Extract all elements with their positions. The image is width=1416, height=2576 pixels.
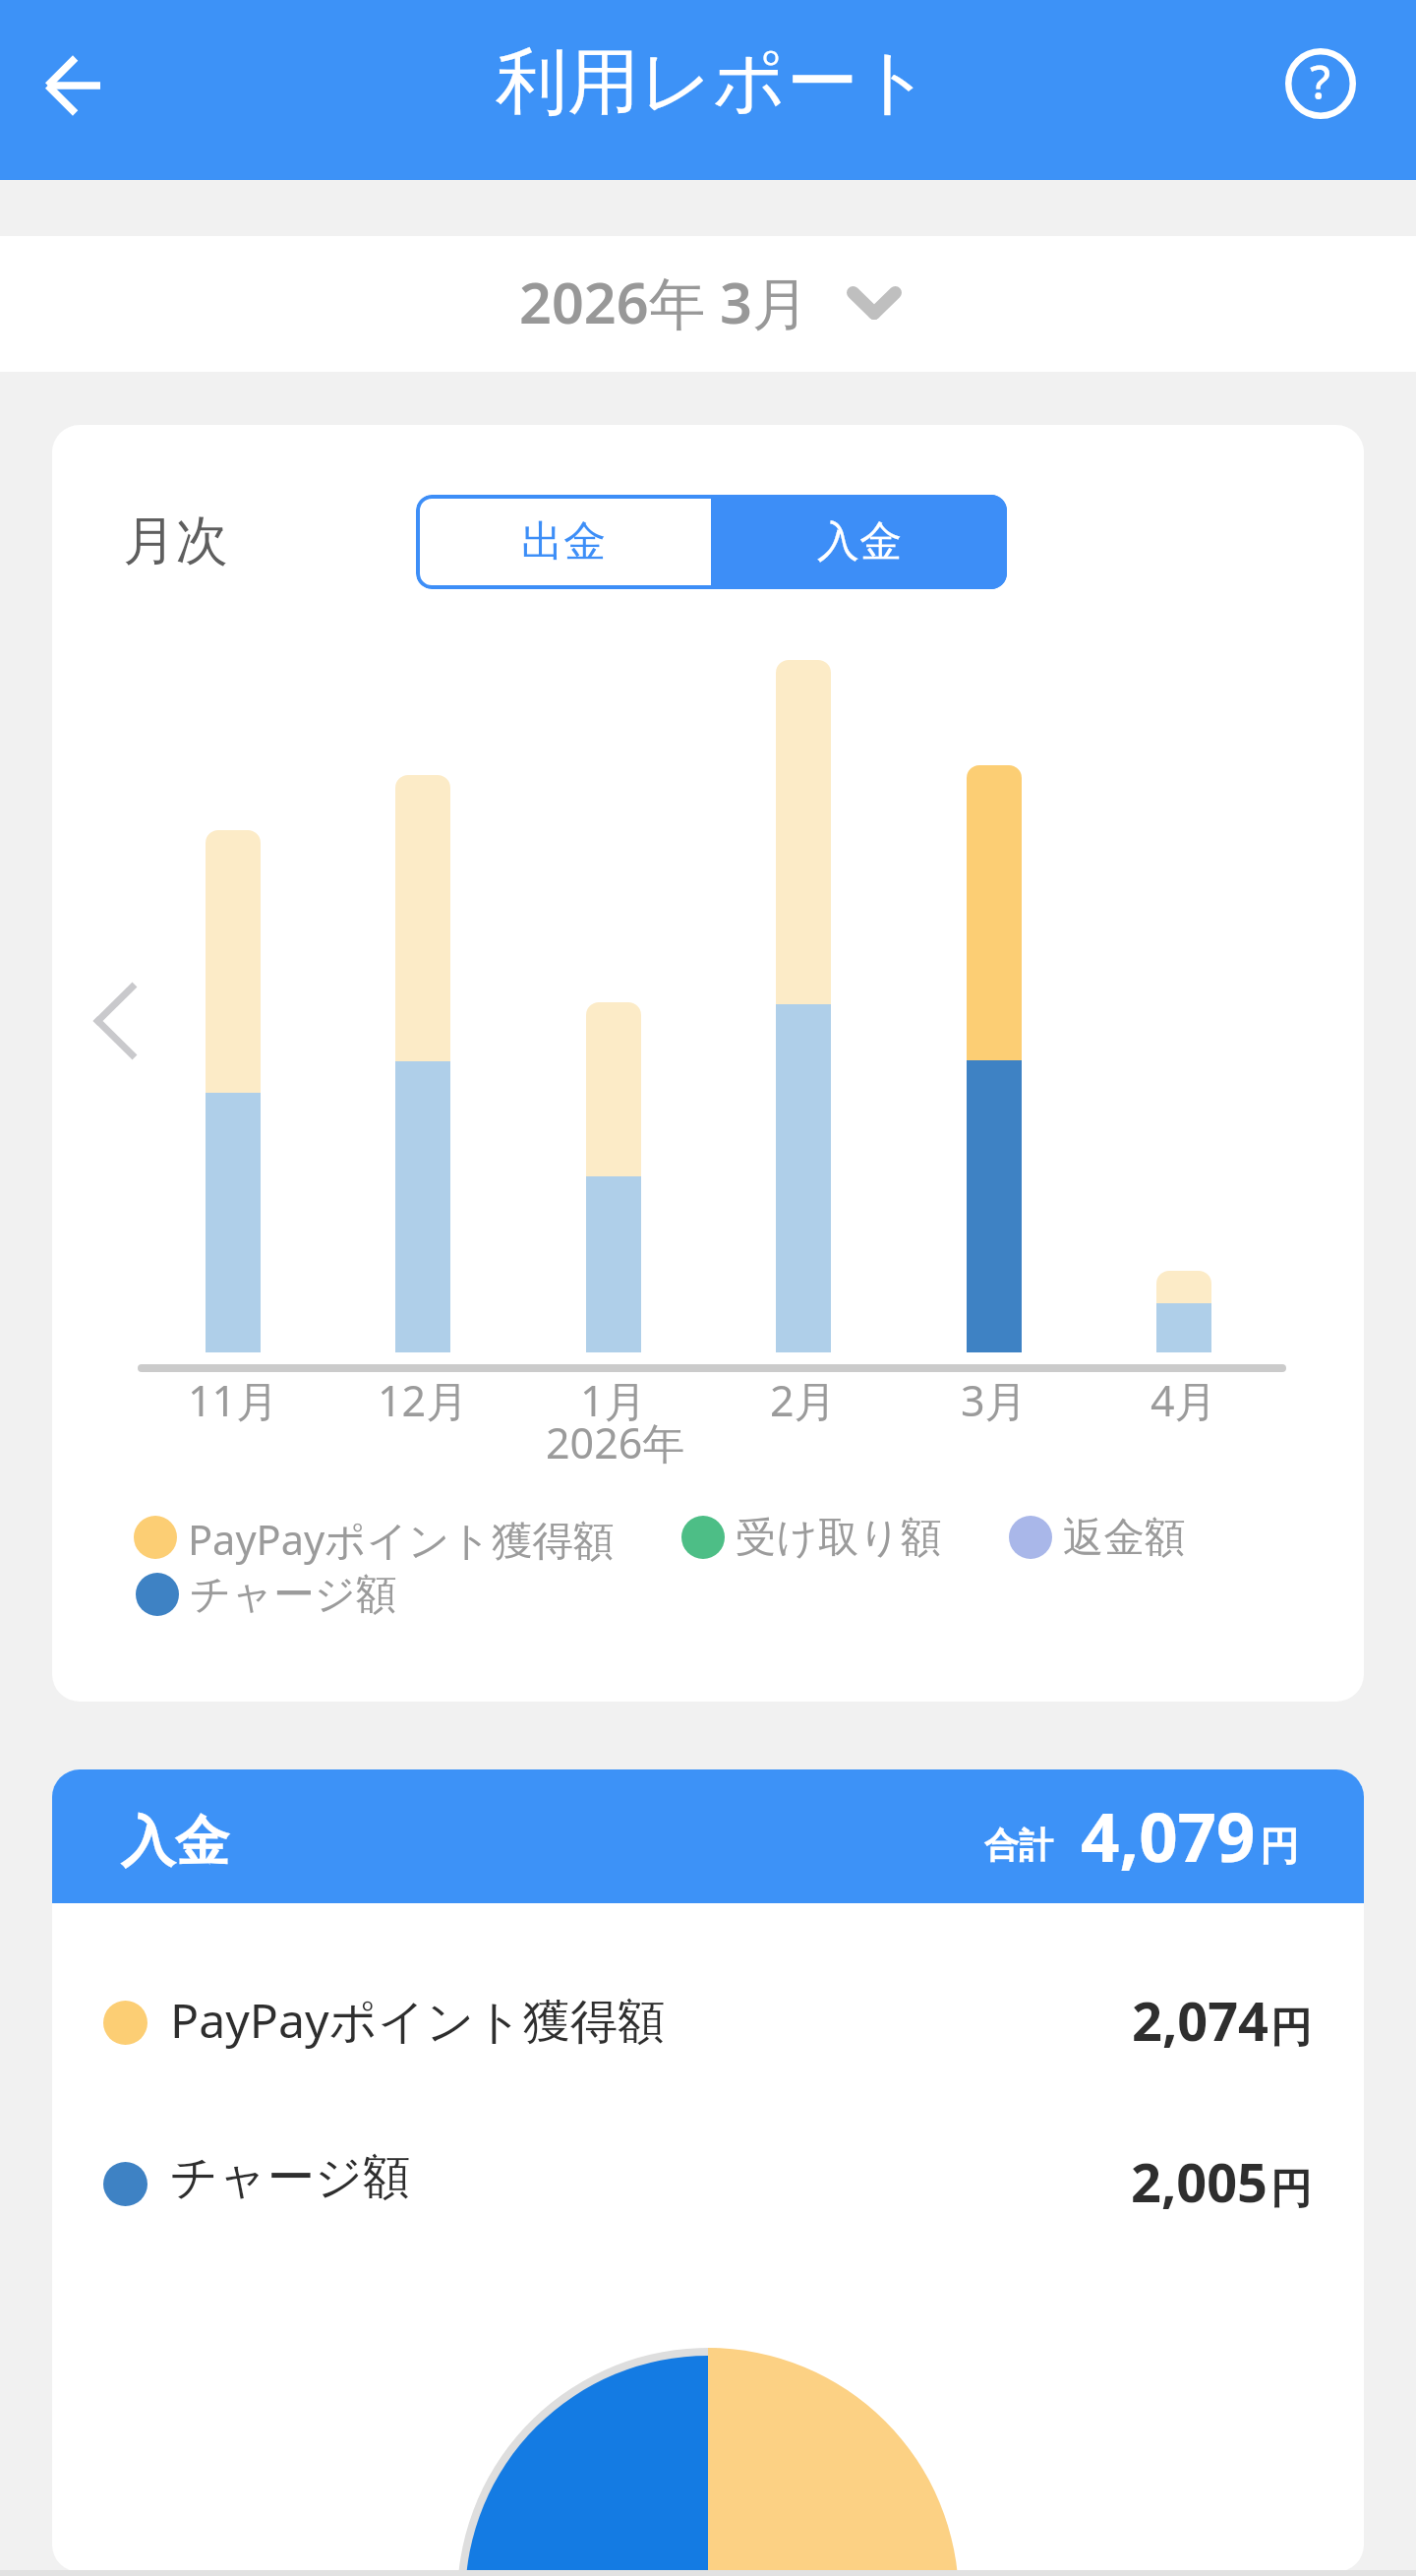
staticText: 利用レポート	[496, 37, 932, 128]
button[interactable]: Previous month	[60, 949, 170, 1093]
staticText: 円	[1260, 1822, 1299, 1871]
button[interactable]: 2026年 3月	[0, 236, 1416, 372]
staticText: チャージ額	[190, 1569, 397, 1620]
staticText: 3月	[961, 1371, 1028, 1429]
staticText: 2月	[770, 1371, 837, 1429]
staticText: 月次	[123, 508, 228, 573]
staticText: 12月	[378, 1371, 469, 1429]
staticText: 4月	[1150, 1371, 1217, 1429]
button[interactable]: Back	[14, 27, 132, 145]
button[interactable]: 出金	[416, 495, 711, 589]
staticText: 返金額	[1063, 1512, 1186, 1563]
staticText: 2026年	[546, 1413, 685, 1471]
staticText: PayPayポイント獲得額	[170, 1987, 666, 2052]
staticText: 出金	[521, 515, 606, 569]
staticText: チャージ額	[170, 2148, 411, 2208]
staticText: PayPayポイント獲得額	[188, 1512, 615, 1568]
staticText: 受け取り額	[736, 1512, 942, 1563]
staticText: 1月	[580, 1371, 647, 1429]
button[interactable]: チャージ額	[52, 2105, 1364, 2262]
staticText: 入金	[817, 515, 902, 569]
staticText: 11月	[188, 1371, 279, 1429]
staticText: 円	[1270, 2003, 1312, 2055]
staticText: 合計	[984, 1824, 1053, 1867]
button[interactable]: 入金	[711, 495, 1007, 589]
staticText: 円	[1270, 2164, 1312, 2216]
staticText: 2,074	[1132, 1984, 1268, 2057]
staticText: 2,005	[1131, 2145, 1268, 2218]
button[interactable]: PayPayポイント獲得額	[52, 1944, 1364, 2101]
staticText: 入金	[121, 1808, 229, 1876]
staticText: ?	[1310, 50, 1331, 113]
staticText: 4,079	[1081, 1789, 1256, 1882]
staticText: 2026年 3月	[519, 264, 809, 341]
button[interactable]: Help	[1262, 25, 1380, 143]
